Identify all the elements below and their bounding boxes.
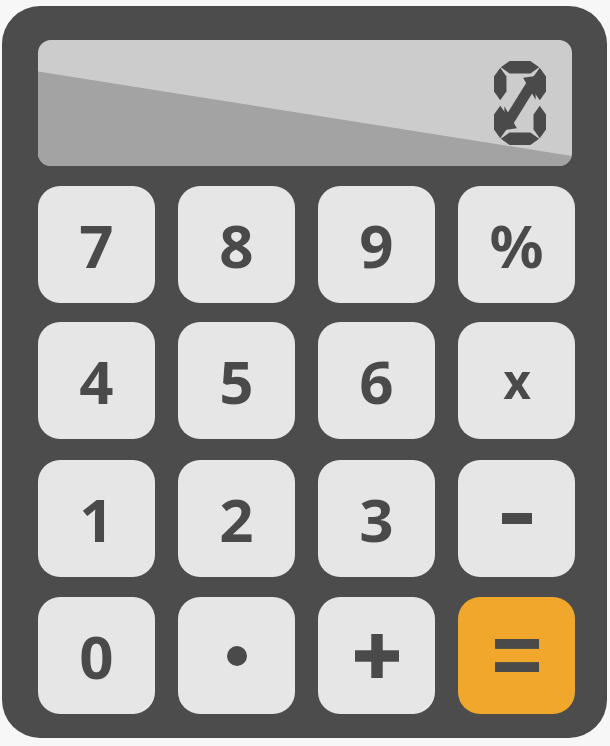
staticText: 7 xyxy=(79,204,114,286)
staticText: 0 xyxy=(79,615,114,697)
button[interactable]: Percent xyxy=(458,186,575,303)
button[interactable]: 7 xyxy=(38,186,155,303)
button[interactable]: 9 xyxy=(318,186,435,303)
staticText: 3 xyxy=(359,478,394,560)
staticText: 2 xyxy=(219,478,254,560)
staticText: 1 xyxy=(79,478,114,560)
button[interactable]: Decimal point xyxy=(178,597,295,714)
button[interactable]: 3 xyxy=(318,460,435,577)
button[interactable]: 1 xyxy=(38,460,155,577)
staticText: 8 xyxy=(219,204,254,286)
button[interactable]: Minus xyxy=(458,460,575,577)
staticText: x xyxy=(503,348,531,413)
button[interactable]: 8 xyxy=(178,186,295,303)
staticText: 4 xyxy=(79,340,114,422)
button[interactable]: Display xyxy=(38,40,572,166)
button[interactable]: Plus xyxy=(318,597,435,714)
staticText: % xyxy=(489,204,544,286)
staticText: 5 xyxy=(219,340,254,422)
staticText: 6 xyxy=(359,340,394,422)
button[interactable]: Multiply xyxy=(458,322,575,439)
button[interactable]: 6 xyxy=(318,322,435,439)
button[interactable]: Equals xyxy=(458,597,575,714)
button[interactable]: 2 xyxy=(178,460,295,577)
button[interactable]: 4 xyxy=(38,322,155,439)
button[interactable]: 0 xyxy=(38,597,155,714)
button[interactable]: 5 xyxy=(178,322,295,439)
staticText: 9 xyxy=(359,204,394,286)
